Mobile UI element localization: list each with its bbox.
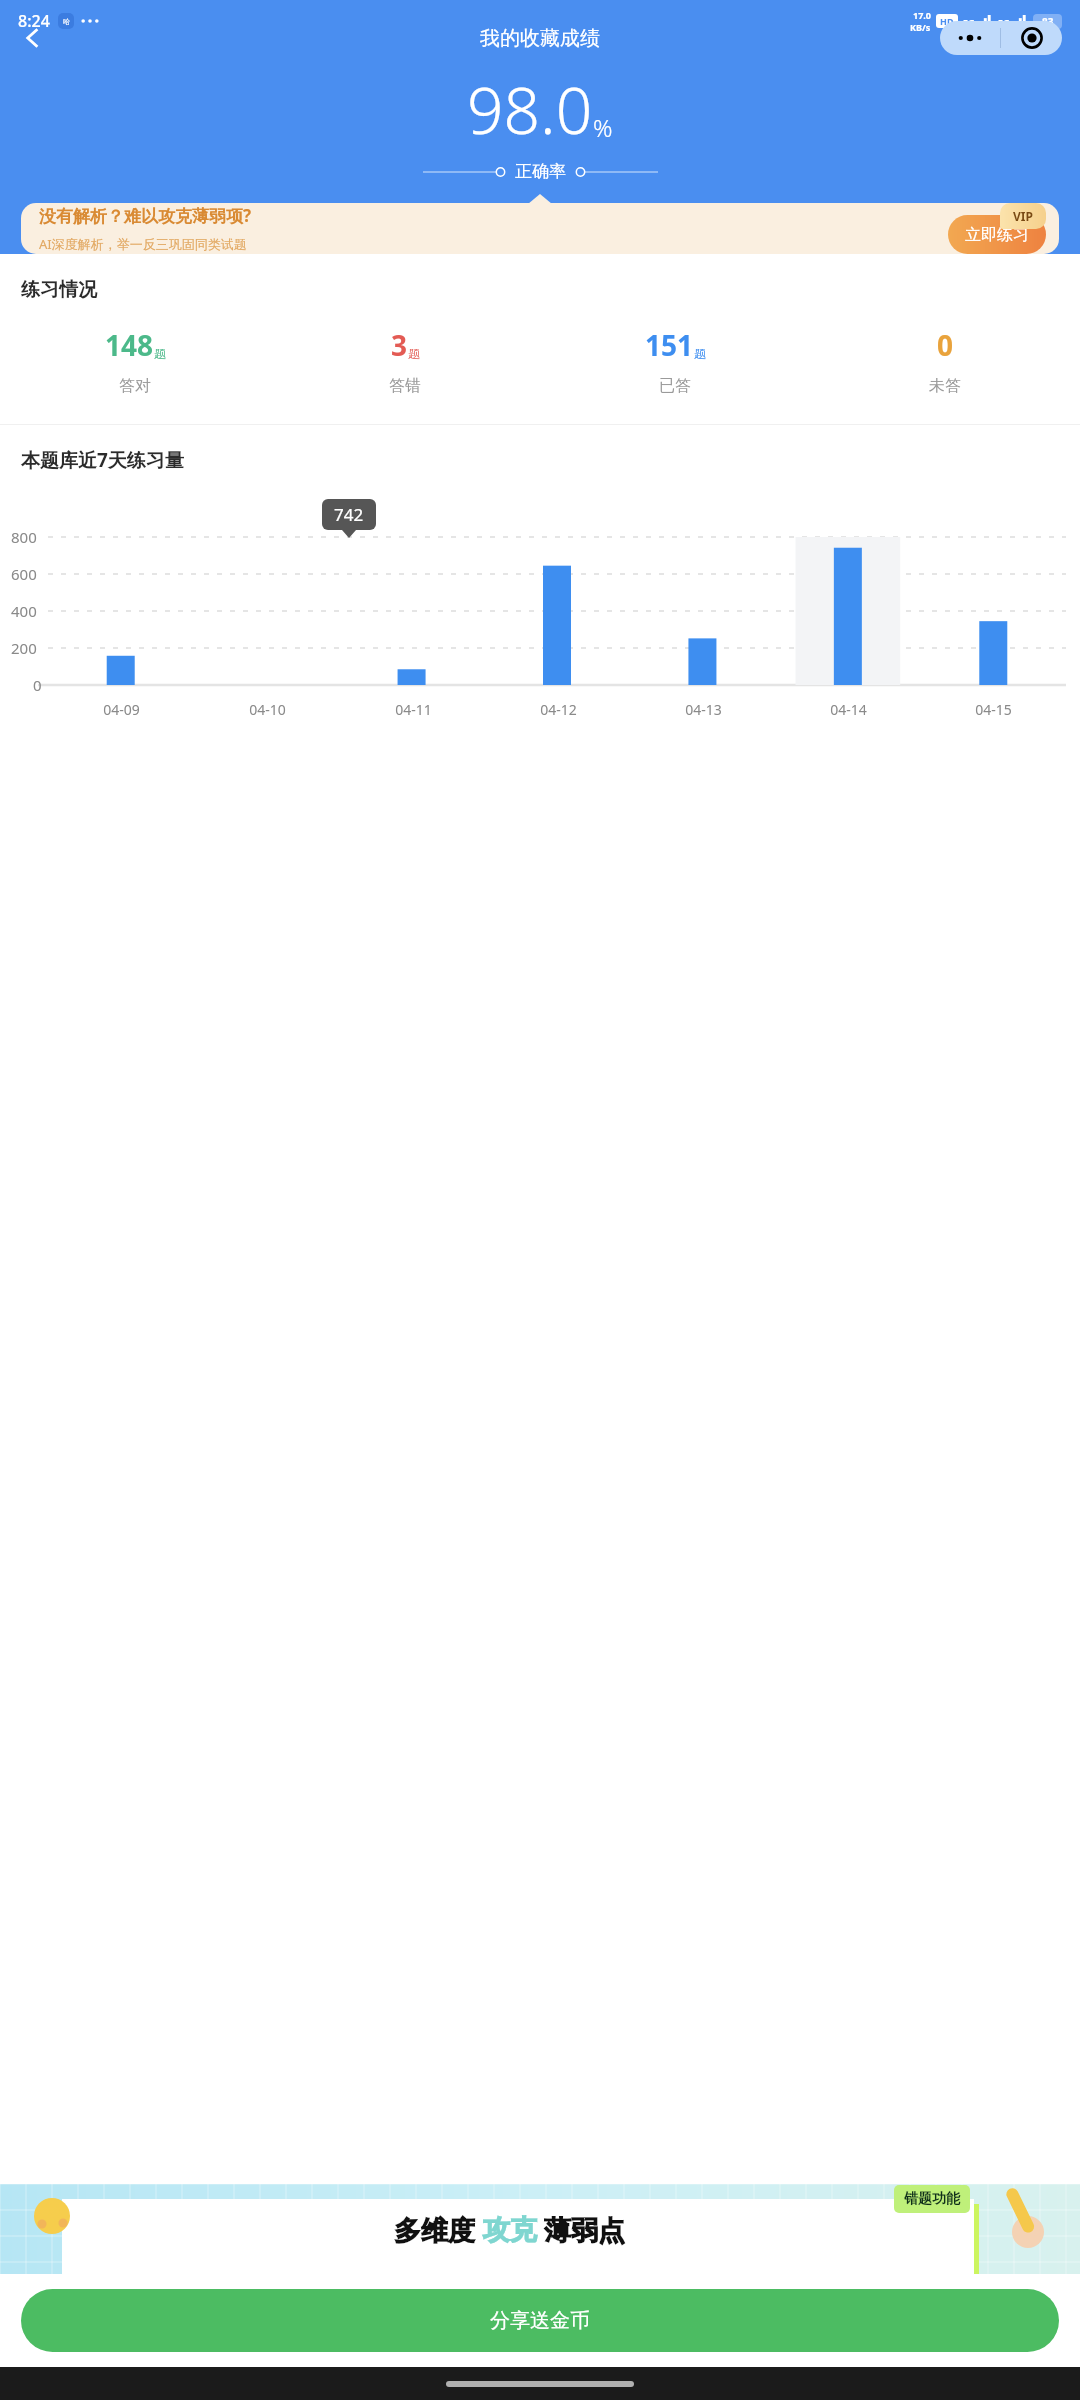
staticText: 未答 [929, 376, 961, 396]
staticText: 98.0 [467, 66, 593, 153]
button[interactable]: 立即练习 [948, 215, 1046, 254]
button[interactable]: Close mini program [1001, 21, 1062, 55]
staticText: 没有解析？难以攻克薄弱项? [39, 204, 252, 227]
staticText: 题 [694, 346, 706, 361]
button[interactable]: 没有解析？难以攻克薄弱项? [21, 203, 1059, 254]
button[interactable]: 3 [270, 326, 540, 396]
staticText: 151 [645, 326, 694, 364]
button[interactable]: 多维度 [0, 2184, 1080, 2274]
button[interactable]: 148 [0, 326, 270, 396]
staticText: KB/s [910, 21, 931, 33]
staticText: 题 [154, 346, 166, 361]
staticText: 已答 [659, 376, 691, 396]
staticText: 04-11 [395, 700, 432, 719]
staticText: 800 [11, 527, 37, 547]
staticText: 04-12 [540, 700, 577, 719]
staticText: 04-14 [830, 700, 867, 719]
staticText: 答错 [389, 376, 421, 396]
staticText: 哈 [63, 17, 70, 26]
button[interactable]: 0 [810, 326, 1080, 396]
staticText: 5G [998, 16, 1010, 28]
staticText: 83 [1042, 15, 1054, 29]
button[interactable]: More options [940, 21, 1000, 55]
staticText: 200 [11, 638, 37, 658]
staticText: 我的收藏成绩 [480, 26, 600, 51]
staticText: 分享送金币 [490, 2308, 590, 2333]
staticText: AI深度解析，举一反三巩固同类试题 [39, 235, 247, 253]
staticText: 薄弱点 [537, 2211, 626, 2248]
staticText: 17.0 [913, 9, 931, 21]
staticText: 5G [963, 16, 975, 28]
staticText: 答对 [119, 376, 151, 396]
button[interactable]: Back [10, 16, 56, 60]
staticText: 立即练习 [965, 225, 1029, 245]
staticText: 正确率 [515, 161, 566, 182]
staticText: 742 [334, 503, 364, 526]
staticText: 多维度 [394, 2211, 483, 2248]
staticText: 0 [937, 326, 954, 364]
staticText: HD [940, 15, 954, 27]
staticText: 练习情况 [21, 278, 97, 302]
staticText: 04-13 [685, 700, 722, 719]
staticText: 0 [33, 675, 42, 695]
staticText: 04-15 [975, 700, 1012, 719]
staticText: VIP [1013, 208, 1033, 224]
button[interactable]: 151 [540, 326, 810, 396]
staticText: 8:24 [18, 10, 50, 32]
staticText: 04-10 [249, 700, 286, 719]
staticText: 攻克 [483, 2213, 537, 2247]
staticText: 3 [391, 326, 408, 364]
staticText: 错题功能 [904, 2190, 960, 2208]
staticText: 本题库近7天练习量 [21, 447, 184, 473]
staticText: 600 [11, 564, 37, 584]
staticText: 题 [408, 346, 420, 361]
staticText: 04-09 [103, 700, 140, 719]
button[interactable]: 分享送金币 [21, 2289, 1059, 2352]
staticText: 400 [11, 601, 37, 621]
staticText: 148 [105, 326, 154, 364]
staticText: % [593, 111, 613, 144]
